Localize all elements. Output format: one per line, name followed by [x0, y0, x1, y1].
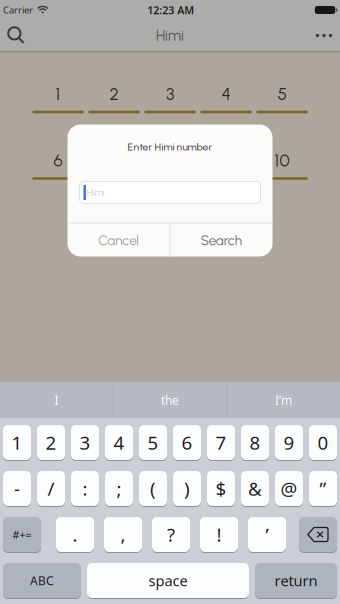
staticText: (	[150, 476, 156, 501]
button[interactable]: 8	[142, 148, 198, 188]
staticText: 6	[181, 430, 192, 455]
staticText: &	[248, 476, 262, 501]
button[interactable]: Himi number	[79, 181, 260, 203]
staticText: 6	[53, 150, 62, 171]
button[interactable]: ”	[309, 470, 337, 506]
staticText: 2	[109, 84, 118, 104]
button[interactable]: Cancel	[68, 224, 170, 257]
button[interactable]: 1	[3, 424, 31, 460]
staticText: 4	[221, 84, 230, 104]
button[interactable]: 10	[254, 148, 310, 188]
button[interactable]: )	[173, 470, 201, 506]
staticText: Himi	[156, 27, 184, 44]
staticText: ?	[167, 522, 175, 547]
button[interactable]: 5	[254, 81, 310, 121]
button[interactable]: More	[308, 20, 340, 51]
staticText: 10	[274, 150, 289, 171]
button[interactable]: 9	[275, 424, 303, 460]
button[interactable]: !	[200, 516, 238, 552]
staticText: 5	[277, 84, 286, 104]
staticText: Enter Himi number	[127, 141, 212, 153]
button[interactable]: return	[255, 562, 337, 598]
staticText: 4	[113, 430, 124, 455]
button[interactable]: (	[139, 470, 167, 506]
button[interactable]: /	[37, 470, 65, 506]
staticText: @	[280, 476, 297, 501]
staticText: 0	[317, 430, 328, 455]
button[interactable]: 6	[173, 424, 201, 460]
button[interactable]: space	[87, 562, 249, 598]
staticText: ;	[116, 476, 121, 501]
staticText: 8	[165, 150, 174, 171]
staticText: :	[82, 476, 87, 501]
button[interactable]: 2	[37, 424, 65, 460]
button[interactable]: $	[207, 470, 235, 506]
staticText: .	[72, 522, 77, 547]
button[interactable]: 4	[105, 424, 133, 460]
staticText: 1	[11, 430, 22, 455]
staticText: -	[14, 476, 20, 501]
button[interactable]: I	[0, 382, 113, 418]
staticText: 2	[45, 430, 56, 455]
staticText: #+=	[12, 527, 31, 542]
staticText: Himi	[87, 187, 105, 198]
button[interactable]: #+=	[3, 516, 41, 552]
button[interactable]: .	[56, 516, 94, 552]
button[interactable]: :	[71, 470, 99, 506]
button[interactable]: 3	[71, 424, 99, 460]
button[interactable]: 2	[86, 81, 142, 121]
staticText: 5	[147, 430, 158, 455]
button[interactable]: @	[275, 470, 303, 506]
staticText: 9	[283, 430, 294, 455]
staticText: 1	[55, 84, 60, 104]
button[interactable]: 8	[241, 424, 269, 460]
staticText: 8	[249, 430, 260, 455]
button[interactable]: ,	[104, 516, 142, 552]
button[interactable]: Search	[0, 20, 32, 51]
button[interactable]: 6	[30, 148, 86, 188]
button[interactable]: Delete	[299, 516, 337, 552]
staticText: space	[148, 571, 187, 590]
staticText: $	[215, 476, 226, 501]
staticText: Carrier	[3, 4, 33, 16]
button[interactable]: 7	[86, 148, 142, 188]
button[interactable]: 7	[207, 424, 235, 460]
button[interactable]: 0	[309, 424, 337, 460]
button[interactable]: 1	[30, 81, 86, 121]
staticText: I’m	[275, 392, 292, 408]
staticText: I	[54, 392, 58, 408]
button[interactable]: 9	[198, 148, 254, 188]
staticText: 12:23 AM	[147, 3, 194, 17]
button[interactable]: 3	[142, 81, 198, 121]
staticText: Search	[201, 232, 242, 249]
button[interactable]: 4	[198, 81, 254, 121]
staticText: ’	[265, 522, 268, 547]
staticText: Cancel	[98, 232, 139, 249]
button[interactable]: I’m	[227, 382, 340, 418]
button[interactable]: Search	[170, 224, 272, 257]
staticText: 3	[79, 430, 90, 455]
staticText: ABC	[30, 572, 54, 588]
button[interactable]: -	[3, 470, 31, 506]
staticText: /	[47, 476, 54, 501]
staticText: ”	[319, 476, 326, 501]
staticText: ,	[120, 522, 125, 547]
button[interactable]: ?	[152, 516, 190, 552]
button[interactable]: 5	[139, 424, 167, 460]
staticText: !	[216, 522, 221, 547]
staticText: 3	[166, 84, 174, 104]
staticText: return	[274, 571, 317, 590]
button[interactable]: ABC	[3, 562, 81, 598]
staticText: the	[161, 392, 179, 408]
button[interactable]: the	[113, 382, 227, 418]
button[interactable]: &	[241, 470, 269, 506]
staticText: 7	[215, 430, 226, 455]
staticText: )	[184, 476, 190, 501]
button[interactable]: ’	[248, 516, 286, 552]
button[interactable]: ;	[105, 470, 133, 506]
